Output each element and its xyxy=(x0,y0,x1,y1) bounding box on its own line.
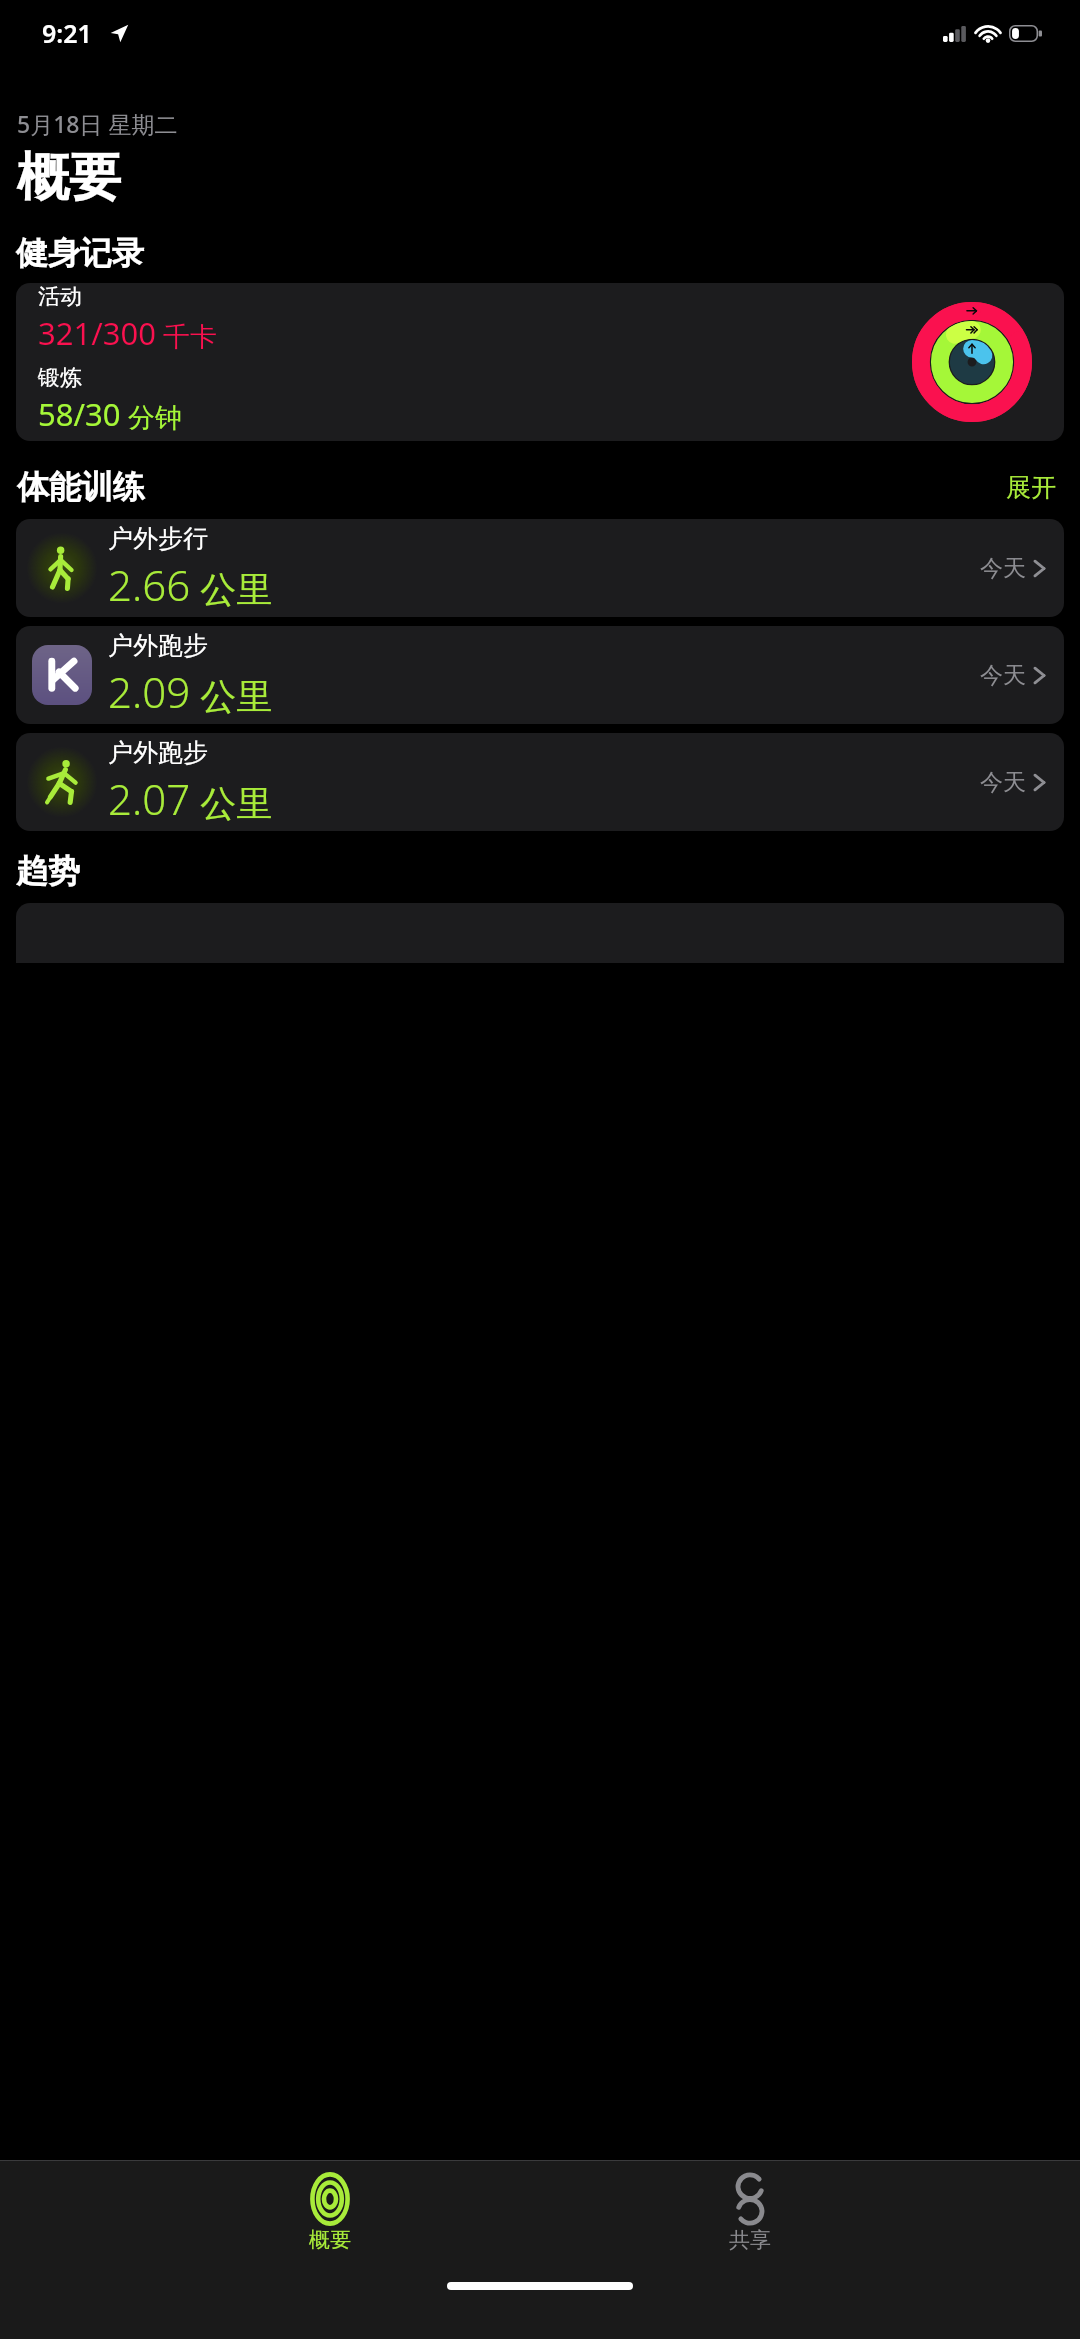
staticText: 321/300 xyxy=(38,312,156,354)
staticText: 2.66 xyxy=(108,556,191,613)
button[interactable]: 户外跑步 xyxy=(16,626,1064,724)
staticText: 户外步行 xyxy=(108,523,208,554)
staticText: 2.09 xyxy=(108,663,191,720)
staticText: 趋势 xyxy=(16,851,80,891)
staticText: 公里 xyxy=(191,671,273,720)
button[interactable]: 户外步行 xyxy=(16,519,1064,617)
staticText: 概要 xyxy=(17,145,121,211)
staticText: 今天 xyxy=(980,661,1026,690)
staticText: 5月18日 星期二 xyxy=(17,108,178,139)
staticText: 体能训练 xyxy=(17,467,145,507)
button[interactable]: 活动 xyxy=(16,283,1064,441)
staticText: 2.07 xyxy=(108,770,191,827)
staticText: 活动 xyxy=(38,283,82,311)
staticText: 9:21 xyxy=(42,16,92,50)
staticText: 户外跑步 xyxy=(108,630,208,661)
staticText: 共享 xyxy=(729,2227,771,2253)
staticText: 公里 xyxy=(191,564,273,613)
button[interactable]: 共享 xyxy=(660,2167,840,2257)
staticText: 58/30 xyxy=(38,393,121,435)
staticText: 今天 xyxy=(980,554,1026,583)
button[interactable]: 概要 xyxy=(240,2167,420,2257)
staticText: 公里 xyxy=(191,778,273,827)
staticText: 户外跑步 xyxy=(108,737,208,768)
staticText: 分钟 xyxy=(121,398,183,435)
staticText: 千卡 xyxy=(156,317,218,354)
staticText: 健身记录 xyxy=(16,233,144,273)
staticText: 今天 xyxy=(980,768,1026,797)
staticText: 锻炼 xyxy=(38,364,82,392)
button[interactable]: 户外跑步 xyxy=(16,733,1064,831)
staticText: 展开 xyxy=(1006,472,1056,503)
staticText: 概要 xyxy=(309,2227,351,2253)
button[interactable]: 展开 xyxy=(1002,468,1060,507)
